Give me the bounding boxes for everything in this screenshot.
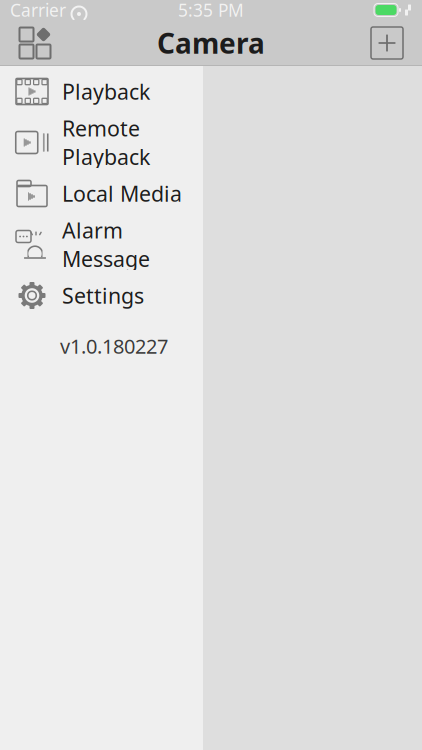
button[interactable]: Playback [0, 66, 203, 117]
staticText: Remote Playback [62, 114, 150, 171]
staticText: Playback [62, 77, 150, 106]
button[interactable]: Remote Playback [0, 117, 203, 168]
button[interactable]: Add Device [360, 20, 414, 66]
button[interactable]: Local Media [0, 168, 203, 219]
staticText: Carrier [10, 0, 66, 21]
button[interactable]: Layout [8, 20, 62, 66]
staticText: Settings [62, 281, 144, 310]
staticText: Alarm Message [62, 216, 150, 273]
staticText: v1.0.180227 [60, 333, 168, 359]
staticText: Local Media [62, 179, 182, 208]
button[interactable]: Alarm Message [0, 219, 203, 270]
staticText: Camera [157, 24, 265, 62]
staticText: 5:35 PM [178, 0, 244, 21]
button[interactable]: Settings [0, 270, 203, 321]
